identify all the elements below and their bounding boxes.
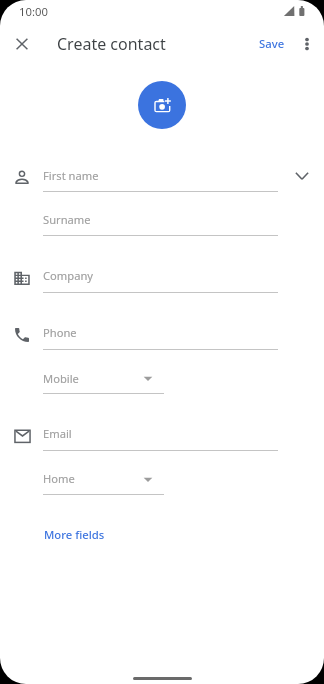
- staticText: First name: [43, 168, 99, 183]
- staticText: Surname: [43, 212, 91, 227]
- button[interactable]: Home: [133, 677, 192, 680]
- button[interactable]: More fields: [36, 521, 113, 548]
- button[interactable]: Select label: [140, 368, 156, 384]
- staticText: Email: [43, 426, 72, 441]
- staticText: More fields: [44, 527, 105, 542]
- button[interactable]: More options: [295, 32, 319, 56]
- button[interactable]: Add contact photo: [138, 81, 186, 129]
- button[interactable]: Expand name fields: [290, 164, 314, 188]
- staticText: Create contact: [57, 33, 166, 55]
- staticText: Mobile: [43, 371, 79, 386]
- staticText: 10:00: [19, 4, 48, 19]
- button[interactable]: Save: [251, 32, 293, 55]
- staticText: Company: [43, 268, 94, 283]
- button[interactable]: Close: [10, 32, 34, 56]
- staticText: Save: [259, 36, 285, 51]
- staticText: Home: [43, 471, 75, 486]
- button[interactable]: Select label: [140, 469, 156, 485]
- staticText: Phone: [43, 325, 77, 340]
